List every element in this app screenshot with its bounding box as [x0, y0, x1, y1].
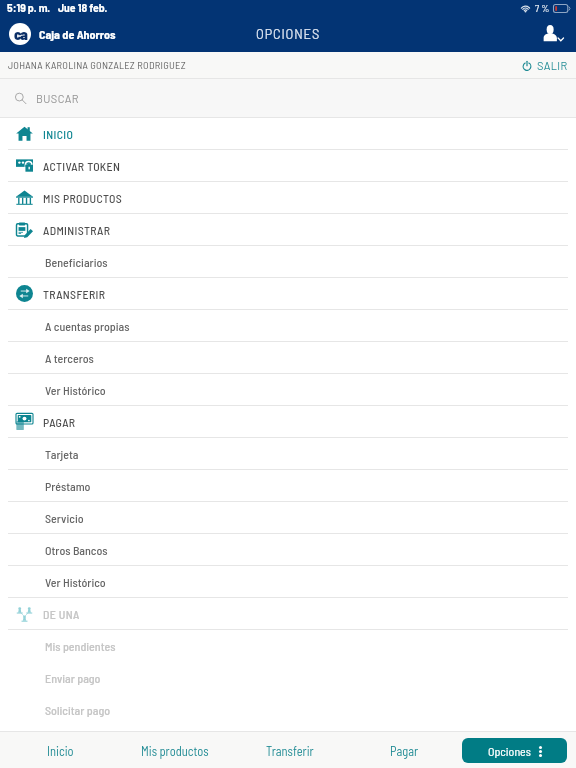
staticText: ca: [14, 25, 27, 43]
button[interactable]: Otros Bancos: [0, 534, 576, 565]
staticText: BUSCAR: [36, 92, 79, 105]
button[interactable]: PAGAR: [0, 406, 576, 437]
staticText: A cuentas propias: [45, 319, 130, 333]
staticText: SALIR: [537, 59, 568, 72]
staticText: Solicitar pago: [45, 703, 111, 717]
button[interactable]: Servicio: [0, 502, 576, 533]
staticText: Mis pendientes: [45, 639, 116, 653]
staticText: Mis productos: [141, 743, 209, 758]
button[interactable]: Transferir: [232, 732, 347, 768]
button[interactable]: A terceros: [0, 342, 576, 373]
staticText: Tarjeta: [45, 447, 79, 461]
staticText: Préstamo: [45, 479, 91, 493]
button[interactable]: ADMINISTRAR: [0, 214, 576, 245]
staticText: Jue 18 feb.: [58, 1, 108, 14]
button[interactable]: INICIO: [0, 118, 576, 149]
staticText: A terceros: [45, 351, 94, 365]
button[interactable]: Opciones: [462, 738, 567, 763]
button[interactable]: Ver Histórico: [0, 374, 576, 405]
button[interactable]: ACTIVAR TOKEN: [0, 150, 576, 181]
staticText: OPCIONES: [256, 26, 321, 41]
staticText: Servicio: [45, 511, 84, 525]
button[interactable]: DE UNA: [0, 598, 576, 629]
staticText: Otros Bancos: [45, 543, 108, 557]
staticText: DE UNA: [43, 607, 80, 621]
button[interactable]: SALIR: [521, 59, 568, 72]
button[interactable]: Inicio: [3, 732, 117, 768]
staticText: Caja de Ahorros: [39, 27, 116, 41]
staticText: Pagar: [390, 743, 419, 758]
button[interactable]: MIS PRODUCTOS: [0, 182, 576, 213]
staticText: MIS PRODUCTOS: [43, 191, 122, 205]
staticText: Enviar pago: [45, 671, 101, 685]
staticText: Ver Histórico: [45, 383, 106, 397]
button[interactable]: Tarjeta: [0, 438, 576, 469]
staticText: PAGAR: [43, 415, 76, 429]
button[interactable]: Mis productos: [117, 732, 232, 768]
staticText: ACTIVAR TOKEN: [43, 159, 121, 173]
staticText: Inicio: [47, 743, 74, 758]
button[interactable]: Beneficiarios: [0, 246, 576, 277]
button[interactable]: Ver Histórico: [0, 566, 576, 597]
staticText: Opciones: [488, 744, 531, 758]
button[interactable]: ca: [9, 23, 116, 45]
button[interactable]: A cuentas propias: [0, 310, 576, 341]
button[interactable]: Mis pendientes: [0, 630, 576, 661]
staticText: 5:19 p. m.: [7, 1, 51, 14]
staticText: Ver Histórico: [45, 575, 106, 589]
button[interactable]: TRANSFERIR: [0, 278, 576, 309]
button[interactable]: Perfil de usuario: [536, 17, 570, 51]
staticText: Beneficiarios: [45, 255, 108, 269]
staticText: ADMINISTRAR: [43, 223, 111, 237]
staticText: JOHANA KAROLINA GONZALEZ RODRIGUEZ: [8, 59, 186, 71]
button[interactable]: BUSCAR: [0, 79, 576, 117]
button[interactable]: Pagar: [347, 732, 462, 768]
staticText: INICIO: [43, 127, 74, 141]
button[interactable]: Enviar pago: [0, 662, 576, 693]
staticText: TRANSFERIR: [43, 287, 106, 301]
button[interactable]: Préstamo: [0, 470, 576, 501]
button[interactable]: Solicitar pago: [0, 694, 576, 725]
staticText: Transferir: [266, 743, 314, 758]
staticText: 7 %: [535, 2, 550, 14]
